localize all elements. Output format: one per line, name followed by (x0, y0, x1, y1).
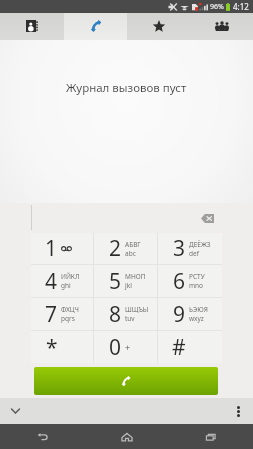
button[interactable]: Contacts (0, 13, 64, 40)
staticText: tuv (125, 314, 135, 323)
button[interactable]: Favourites (127, 13, 190, 40)
staticText: 4 (45, 267, 58, 296)
button[interactable]: Call (34, 367, 218, 395)
staticText: mno (189, 281, 204, 290)
staticText: ghi (61, 281, 71, 290)
staticText: ДЕЁЖЗ (189, 240, 211, 249)
button[interactable]: Recents (169, 424, 253, 449)
button[interactable]: 5 (94, 265, 158, 297)
button[interactable]: 4 (31, 265, 94, 297)
staticText: 9 (173, 300, 186, 329)
staticText: ШЩЪЫ (125, 305, 149, 314)
button[interactable]: 2 (94, 233, 158, 264)
staticText: АБВГ (125, 240, 141, 249)
staticText: РСТУ (189, 272, 205, 281)
button[interactable]: Groups (190, 13, 253, 40)
button[interactable]: Hide dialpad (6, 402, 24, 420)
staticText: 5 (109, 267, 122, 296)
button[interactable]: Back (0, 424, 85, 449)
button[interactable]: # (158, 331, 222, 363)
staticText: wxyz (189, 314, 204, 323)
staticText: 96% (210, 2, 224, 12)
button[interactable]: More options (229, 402, 247, 420)
staticText: + (125, 341, 131, 353)
staticText: 2 (109, 234, 122, 263)
staticText: 6 (173, 267, 186, 296)
button[interactable]: Home (85, 424, 169, 449)
button[interactable]: 1 (31, 233, 94, 264)
staticText: abc (125, 249, 136, 258)
button[interactable]: 8 (94, 298, 158, 330)
button[interactable]: 6 (158, 265, 222, 297)
staticText: ФХЦЧ (61, 305, 79, 314)
staticText: 7 (45, 300, 58, 329)
staticText: МНОП (125, 272, 146, 281)
button[interactable]: Backspace (196, 209, 218, 227)
staticText: 8 (109, 300, 122, 329)
staticText: 3 (173, 234, 186, 263)
button[interactable]: 7 (31, 298, 94, 330)
staticText: def (189, 249, 199, 258)
staticText: ЬЭЮЯ (189, 305, 208, 314)
button[interactable]: 9 (158, 298, 222, 330)
button[interactable]: Dialer (64, 13, 127, 40)
staticText: 4:12 (233, 1, 249, 12)
staticText: 1 (45, 234, 58, 263)
staticText: jkl (125, 281, 132, 290)
staticText: Журнал вызовов пуст (66, 80, 187, 96)
staticText: pqrs (61, 314, 75, 323)
staticText: ИЙКЛ (61, 272, 80, 281)
button[interactable]: * (31, 331, 94, 363)
staticText: * (46, 333, 58, 362)
staticText: 0 (109, 333, 122, 362)
button[interactable]: 0 (94, 331, 158, 363)
button[interactable]: 3 (158, 233, 222, 264)
staticText: # (172, 333, 186, 362)
